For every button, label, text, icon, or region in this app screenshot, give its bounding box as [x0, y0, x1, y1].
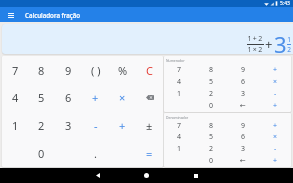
staticText: + [92, 90, 99, 105]
staticText: + [273, 101, 278, 111]
button[interactable]: Back [90, 168, 105, 183]
button[interactable]: % [109, 57, 136, 84]
button[interactable]: 7 [2, 57, 28, 84]
button[interactable]: 9 [227, 63, 259, 76]
button[interactable]: 0 [195, 100, 227, 112]
button[interactable]: 8 [195, 120, 227, 131]
button[interactable]: - [82, 111, 109, 139]
staticText: Calculadora fração [25, 11, 81, 19]
staticText: 5 [209, 132, 214, 142]
staticText: 2 [209, 89, 214, 99]
button[interactable]: × [259, 76, 291, 88]
button[interactable]: 7 [164, 63, 195, 76]
staticText: 2 [38, 118, 45, 133]
staticText: 3 [241, 144, 246, 154]
button[interactable]: × [259, 131, 291, 143]
button[interactable]: Home [139, 168, 154, 183]
button[interactable]: + [259, 155, 291, 167]
button[interactable]: 1 [164, 143, 195, 155]
button[interactable]: 1 [164, 88, 195, 100]
staticText: 3 [65, 118, 72, 133]
button[interactable]: 3 [227, 143, 259, 155]
button[interactable]: Open navigation menu [5, 9, 17, 21]
button[interactable]: 2 [28, 111, 55, 139]
button[interactable]: 3 [227, 88, 259, 100]
button[interactable]: 6 [227, 76, 259, 88]
staticText: 1 [287, 35, 291, 44]
button[interactable]: ← [227, 155, 259, 167]
button[interactable]: 5 [195, 131, 227, 143]
staticText: ← [240, 102, 246, 110]
button[interactable]: 9 [55, 57, 82, 84]
staticText: 5:43 [280, 0, 290, 7]
button[interactable]: + [259, 120, 291, 131]
button[interactable]: 8 [195, 63, 227, 76]
other: Backspace [146, 95, 154, 100]
staticText: 9 [65, 63, 72, 78]
button[interactable]: 4 [2, 84, 28, 111]
staticText: 7 [12, 63, 19, 78]
button[interactable]: 2 [195, 143, 227, 155]
staticText: + [273, 65, 278, 75]
button[interactable]: . [82, 139, 109, 167]
button[interactable]: + [109, 111, 136, 139]
staticText: 8 [38, 63, 45, 78]
button[interactable]: + [82, 84, 109, 111]
staticText: 9 [241, 65, 246, 75]
staticText: 0 [209, 156, 214, 166]
staticText: - [274, 144, 277, 154]
staticText: 1×2 [247, 45, 264, 54]
button[interactable]: + [259, 100, 291, 112]
button[interactable]: 1 [2, 111, 28, 139]
staticText: 1 [177, 89, 182, 99]
button[interactable]: 0 [28, 139, 55, 167]
staticText: × [273, 77, 278, 87]
staticText: 3 [241, 89, 246, 99]
button[interactable]: 9 [227, 120, 259, 131]
button[interactable]: 6 [55, 84, 82, 111]
button[interactable]: 0 [195, 155, 227, 167]
button[interactable]: C [136, 57, 163, 84]
button[interactable]: 5 [28, 84, 55, 111]
staticText: 4 [177, 132, 182, 142]
button[interactable]: + [259, 63, 291, 76]
staticText: 6 [241, 77, 246, 87]
button[interactable]: 2 [195, 88, 227, 100]
button[interactable]: 7 [164, 120, 195, 131]
staticText: 0 [38, 146, 45, 161]
button[interactable]: = [136, 139, 163, 167]
staticText: 1 [12, 118, 19, 133]
button[interactable]: 4 [164, 131, 195, 143]
staticText: 9 [241, 121, 246, 131]
button[interactable]: - [259, 88, 291, 100]
staticText: Numerador [166, 58, 185, 63]
staticText: ← [240, 157, 246, 165]
staticText: - [274, 89, 277, 99]
staticText: - [94, 118, 98, 133]
staticText: 2 [209, 144, 214, 154]
button[interactable]: 3 [55, 111, 82, 139]
staticText: × [119, 90, 126, 105]
button[interactable]: - [259, 143, 291, 155]
button[interactable]: ← [227, 100, 259, 112]
button[interactable]: 4 [164, 76, 195, 88]
staticText: 8 [209, 121, 214, 131]
staticText: + [265, 35, 273, 53]
button[interactable]: Backspace [136, 84, 163, 111]
button[interactable]: × [109, 84, 136, 111]
button[interactable]: ( ) [82, 57, 109, 84]
staticText: 4 [12, 90, 19, 105]
button[interactable]: 8 [28, 57, 55, 84]
staticText: 7 [177, 121, 182, 131]
button[interactable]: 6 [227, 131, 259, 143]
button[interactable]: ± [136, 111, 163, 139]
button[interactable]: 5 [195, 76, 227, 88]
staticText: . [94, 146, 97, 161]
staticText: 5 [38, 90, 45, 105]
button[interactable]: Recent apps [188, 168, 203, 183]
